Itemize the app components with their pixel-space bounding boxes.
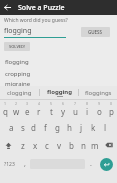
staticText: p [109,106,114,117]
button[interactable]: floggings [79,86,117,99]
staticText: clogging [7,89,32,97]
staticText: 0 [110,101,113,106]
staticText: f [44,122,47,133]
staticText: x [33,140,38,151]
button[interactable]: Shift [0,136,17,154]
staticText: o [97,106,102,117]
staticText: n [81,140,86,151]
staticText: m [91,140,99,151]
staticText: h [67,122,72,133]
staticText: a [9,122,14,133]
staticText: . [90,159,92,169]
staticText: c [45,140,49,151]
button[interactable]: . [85,154,96,174]
staticText: k [91,122,96,133]
button[interactable]: s [17,118,28,136]
button[interactable]: c [41,136,53,154]
button[interactable]: migraine [0,80,117,86]
staticText: ?123 [4,161,15,168]
staticText: 5 [50,101,53,106]
staticText: z [21,140,25,151]
button[interactable]: GUESS [81,27,110,37]
staticText: GUESS [88,29,103,35]
button[interactable]: h [63,118,75,136]
button[interactable]: SOLVED! [4,42,30,51]
staticText: g [55,122,60,133]
button[interactable]: z [17,136,29,154]
staticText: l [104,122,107,133]
button[interactable]: , [19,154,30,174]
staticText: w [13,106,20,117]
button[interactable]: cropping [0,68,117,80]
button[interactable]: clogging [0,86,39,99]
button[interactable]: 1 [0,100,11,118]
staticText: 7 [74,101,77,106]
staticText: s [21,122,25,133]
staticText: 8 [86,101,89,106]
staticText: e [25,106,30,117]
button[interactable]: b [65,136,77,154]
button[interactable]: 4 [33,100,45,118]
staticText: b [69,140,74,151]
staticText: floggings [85,89,112,97]
button[interactable]: 9 [93,100,105,118]
staticText: i [86,106,89,117]
button[interactable]: Back [0,0,15,15]
button[interactable]: 0 [105,100,117,118]
staticText: u [73,106,78,117]
button[interactable]: 3 [22,100,33,118]
staticText: flogging [5,58,29,66]
button[interactable]: 7 [69,100,81,118]
button[interactable]: f [39,118,51,136]
staticText: flogging [47,88,72,96]
staticText: Which word did you guess? [4,17,68,24]
staticText: Solve a Puzzle [18,3,65,13]
button[interactable]: l [99,118,111,136]
staticText: migraine [5,80,31,86]
button[interactable]: flogging [4,26,80,38]
staticText: 2 [15,101,18,106]
staticText: j [80,122,83,133]
button[interactable]: m [89,136,101,154]
button[interactable]: 8 [81,100,93,118]
button[interactable]: d [28,118,39,136]
button[interactable]: n [77,136,89,154]
staticText: t [50,106,53,117]
staticText: d [31,122,36,133]
staticText: 3 [26,101,29,106]
staticText: 6 [62,101,65,106]
button[interactable]: a [6,118,17,136]
button[interactable]: 2 [11,100,22,118]
staticText: flogging [4,26,32,36]
button[interactable]: g [51,118,63,136]
button[interactable]: flogging [40,86,78,99]
staticText: r [37,106,41,117]
staticText: y [61,106,66,117]
button[interactable]: k [87,118,99,136]
button[interactable]: ?123 [0,154,19,174]
staticText: 9 [98,101,101,106]
staticText: , [24,159,26,169]
staticText: q [3,106,8,117]
staticText: cropping [5,70,31,78]
button[interactable]: v [53,136,65,154]
staticText: SOLVED! [9,44,26,49]
button[interactable]: Enter [96,154,117,174]
staticText: v [57,140,62,151]
button[interactable]: j [75,118,87,136]
button[interactable]: Backspace [101,136,117,154]
staticText: 4 [38,101,41,106]
button[interactable]: flogging [0,56,117,68]
button[interactable]: x [29,136,41,154]
staticText: 1 [4,101,7,106]
button[interactable]: 6 [57,100,69,118]
button[interactable]: 5 [45,100,57,118]
